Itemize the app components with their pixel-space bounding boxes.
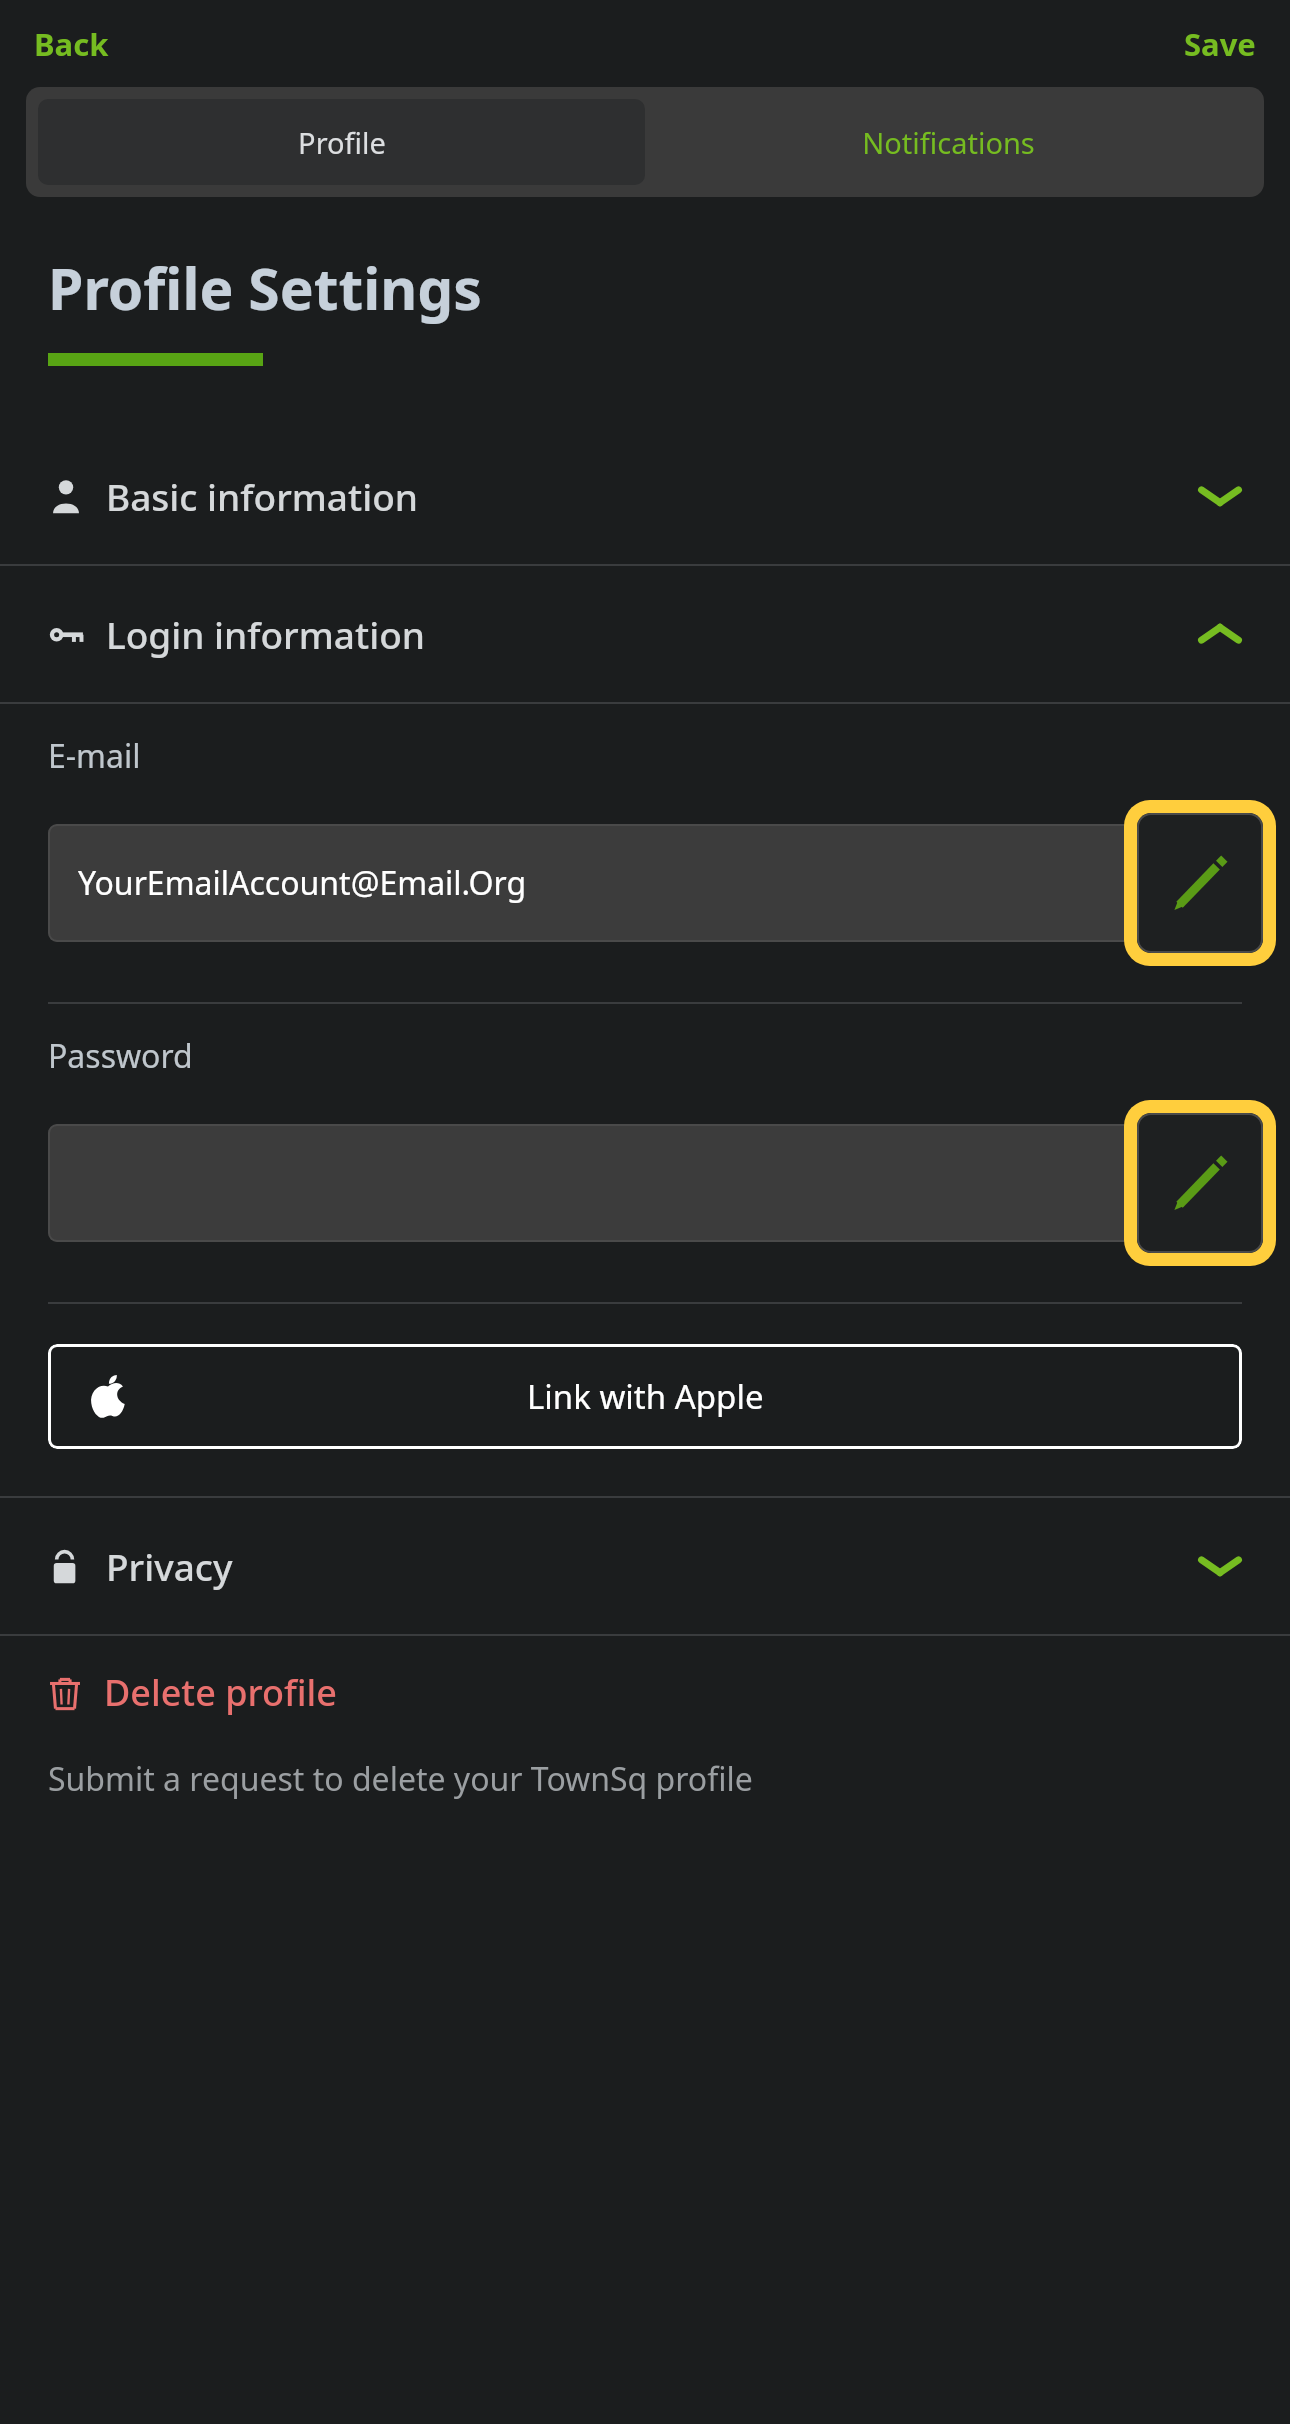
button[interactable]: YourEmailAccount@Email.Org bbox=[48, 824, 1148, 942]
staticText: E-mail bbox=[48, 734, 141, 778]
button[interactable]: Link with Apple bbox=[48, 1344, 1242, 1449]
staticText: Notifications bbox=[862, 123, 1035, 162]
staticText: Back bbox=[34, 23, 109, 65]
button[interactable]: Privacy bbox=[0, 1498, 1290, 1634]
button[interactable]: Delete profile bbox=[0, 1636, 1290, 1821]
staticText: Basic information bbox=[106, 471, 418, 521]
staticText: Privacy bbox=[106, 1541, 233, 1591]
staticText: Profile Settings bbox=[48, 249, 482, 327]
button[interactable]: Login information bbox=[0, 566, 1290, 702]
staticText: YourEmailAccount@Email.Org bbox=[78, 861, 527, 905]
staticText: Profile bbox=[298, 123, 386, 162]
staticText: Delete profile bbox=[104, 1668, 337, 1717]
button[interactable] bbox=[48, 1124, 1148, 1242]
button[interactable]: Edit password bbox=[1124, 1100, 1276, 1266]
button[interactable]: Profile bbox=[38, 99, 645, 185]
staticText: Login information bbox=[106, 609, 425, 659]
staticText: Save bbox=[1184, 23, 1256, 65]
button[interactable]: Basic information bbox=[0, 428, 1290, 564]
button[interactable]: Save bbox=[1176, 17, 1264, 71]
button[interactable]: Back bbox=[26, 17, 117, 71]
button[interactable]: Edit e-mail bbox=[1124, 800, 1276, 966]
button[interactable]: Notifications bbox=[645, 99, 1252, 185]
staticText: Submit a request to delete your TownSq p… bbox=[48, 1757, 753, 1801]
staticText: Password bbox=[48, 1034, 193, 1078]
staticText: Link with Apple bbox=[527, 1374, 764, 1419]
